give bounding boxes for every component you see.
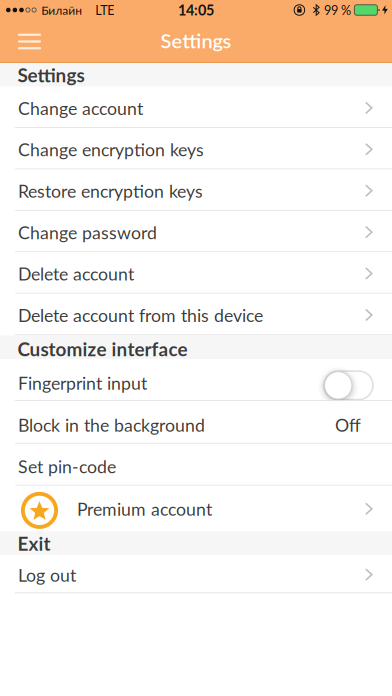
staticText: Delete account [18, 263, 134, 284]
staticText: LTE [95, 2, 114, 18]
button[interactable]: Delete account from this device [0, 294, 392, 335]
button[interactable]: Change account [0, 87, 392, 128]
staticText: Delete account from this device [18, 305, 263, 326]
staticText: Settings [160, 28, 231, 52]
staticText: Change encryption keys [18, 139, 204, 160]
staticText: Customize interface [17, 337, 187, 360]
staticText: Settings [17, 63, 84, 86]
staticText: 99 % [324, 2, 351, 18]
button[interactable]: Premium account [0, 486, 392, 531]
staticText: Restore encryption keys [18, 180, 203, 201]
staticText: Set pin-code [18, 456, 116, 477]
staticText: Off [335, 414, 361, 435]
staticText: 14:05 [178, 1, 214, 19]
button[interactable]: Delete account [0, 252, 392, 294]
staticText: Билайн [41, 3, 82, 17]
staticText: Block in the background [18, 414, 205, 435]
staticText: Log out [18, 564, 76, 585]
staticText: Premium account [77, 498, 212, 520]
button[interactable]: Log out [0, 555, 392, 593]
button[interactable]: Set pin-code [0, 444, 392, 486]
button[interactable]: Change encryption keys [0, 128, 392, 169]
button[interactable]: Change password [0, 211, 392, 252]
staticText: Fingerprint input [18, 372, 147, 393]
staticText: Exit [17, 532, 50, 555]
button[interactable]: Fingerprint input [0, 359, 392, 401]
button[interactable]: Restore encryption keys [0, 169, 392, 211]
staticText: Change password [18, 222, 157, 243]
button[interactable] [0, 28, 41, 55]
staticText: Change account [18, 97, 143, 119]
button[interactable]: Block in the background [0, 401, 392, 444]
